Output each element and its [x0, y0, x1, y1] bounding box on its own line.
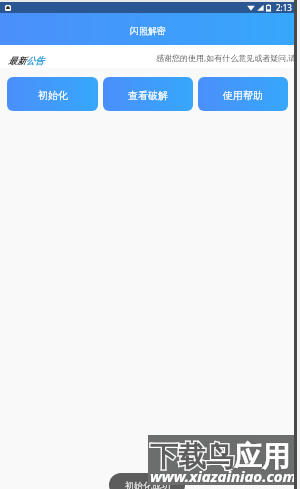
staticText: 公告	[26, 55, 44, 66]
staticText: 闪照解密	[130, 25, 166, 36]
staticText: 感谢您的使用,如有什么意见或者疑问,请进	[156, 52, 300, 63]
button[interactable]: 查看破解	[103, 77, 193, 111]
staticText: 最新	[8, 55, 26, 66]
button[interactable]: 初始化成功	[109, 473, 185, 489]
staticText: 2:13	[276, 2, 292, 13]
staticText: www.xiazainiao.com	[150, 466, 297, 486]
button[interactable]: 使用帮助	[198, 77, 288, 111]
staticText: 应用	[234, 439, 290, 474]
staticText: 下载鸟	[150, 439, 234, 474]
button[interactable]: 初始化	[7, 77, 98, 111]
staticText: 初始化	[38, 89, 68, 102]
staticText: 初始化成功	[125, 480, 170, 489]
staticText: 使用帮助	[223, 89, 263, 102]
staticText: 应用	[234, 439, 290, 474]
staticText: 查看破解	[128, 89, 168, 102]
staticText: 下载鸟	[150, 439, 234, 474]
